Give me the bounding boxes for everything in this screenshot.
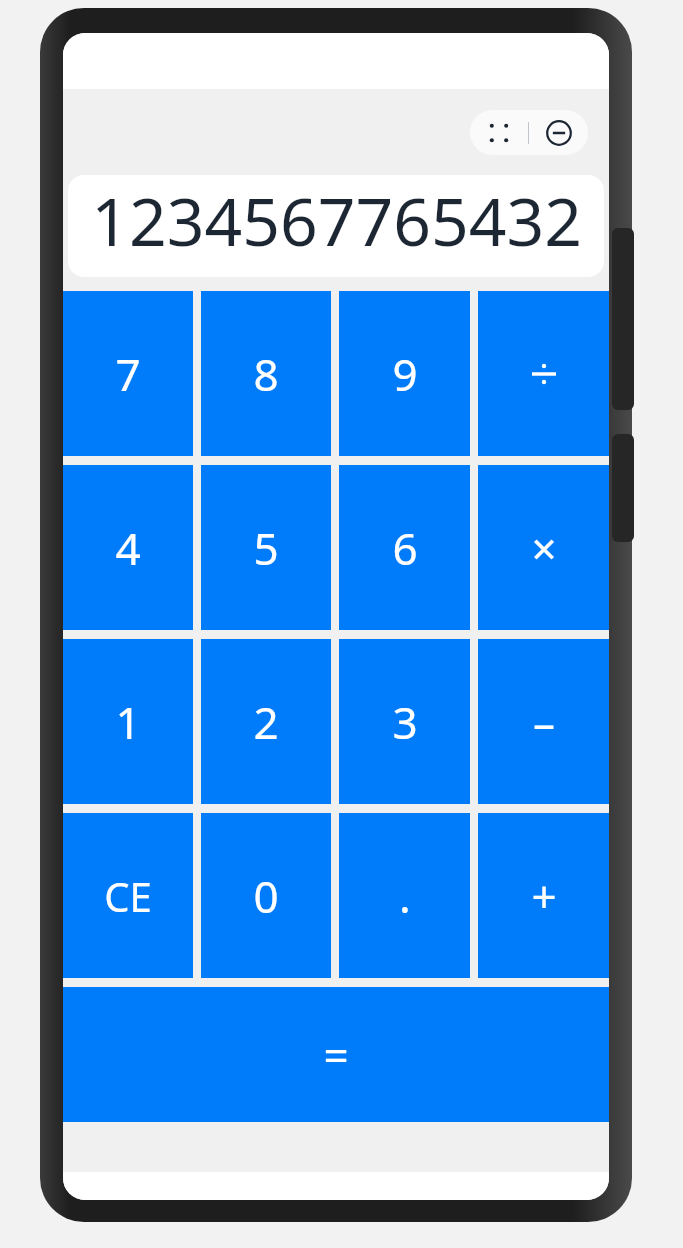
button[interactable]: × (478, 465, 609, 630)
button[interactable] (478, 291, 609, 456)
button[interactable]: + (478, 813, 609, 978)
staticText: 12345677654321 (68, 175, 582, 277)
staticText: 2 (253, 692, 279, 752)
button[interactable]: 12345677654321 (68, 175, 604, 277)
staticText: CE (104, 869, 152, 923)
staticText: 9 (392, 344, 418, 404)
other: Volume (612, 228, 634, 410)
staticText: 7 (115, 344, 141, 404)
staticText: 5 (253, 518, 279, 578)
button[interactable]: 2 (201, 639, 331, 804)
button[interactable]: 1 (63, 639, 193, 804)
staticText: = (323, 1025, 349, 1085)
staticText: 0 (253, 866, 279, 926)
button[interactable]: 8 (201, 291, 331, 456)
button[interactable]: 7 (63, 291, 193, 456)
staticText: 6 (392, 518, 418, 578)
other: Power (612, 434, 634, 542)
staticText: 8 (253, 344, 279, 404)
staticText: . (399, 866, 411, 926)
staticText: – (533, 692, 555, 752)
button[interactable]: 0 (201, 813, 331, 978)
button[interactable]: – (478, 639, 609, 804)
staticText: × (531, 518, 557, 578)
button[interactable]: . (339, 813, 470, 978)
button[interactable]: CE (63, 813, 193, 978)
button[interactable]: Minimize (529, 110, 588, 155)
button[interactable]: 4 (63, 465, 193, 630)
button[interactable]: 9 (339, 291, 470, 456)
button[interactable]: 6 (339, 465, 470, 630)
button[interactable]: 3 (339, 639, 470, 804)
staticText: 3 (392, 692, 418, 752)
button[interactable]: Drag window (470, 110, 528, 155)
button[interactable]: = (63, 987, 609, 1122)
staticText: + (531, 866, 557, 926)
staticText: 1 (115, 692, 141, 752)
button[interactable]: 5 (201, 465, 331, 630)
staticText: 4 (115, 518, 141, 578)
